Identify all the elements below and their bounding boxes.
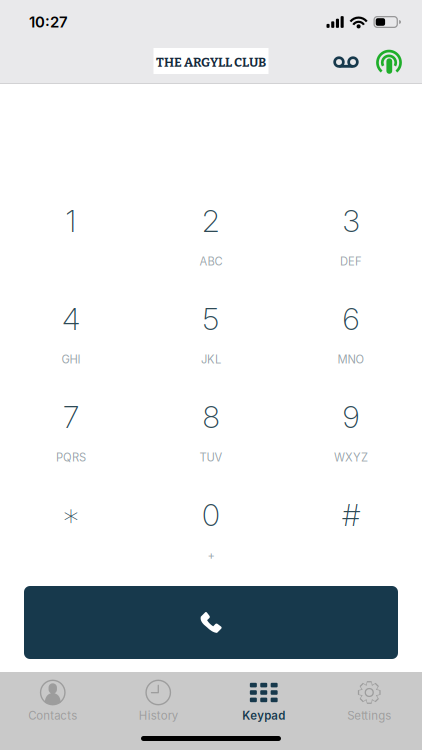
staticText: GHI [61, 353, 80, 366]
button[interactable]: Contacts [0, 677, 105, 725]
staticText: Keypad [242, 709, 285, 722]
staticText: 9 [342, 399, 359, 435]
button[interactable]: 7 [1, 402, 141, 500]
staticText: 0 [202, 497, 220, 533]
button[interactable]: 6 [281, 304, 421, 402]
staticText: ABC [199, 255, 222, 268]
staticText: + [207, 549, 214, 562]
button[interactable]: Voicemail [328, 46, 364, 80]
button[interactable]: Call [24, 586, 398, 659]
staticText: PQRS [56, 451, 86, 464]
staticText: # [342, 497, 360, 533]
staticText: 3 [342, 203, 359, 239]
staticText: Contacts [28, 709, 77, 722]
staticText: Settings [347, 709, 391, 722]
button[interactable]: Keypad [211, 677, 316, 725]
button[interactable]: 3 [281, 206, 421, 304]
button[interactable]: 2 [141, 206, 281, 304]
button[interactable]: Settings [316, 677, 422, 725]
staticText: THE ARGYLL CLUB [156, 55, 266, 70]
button[interactable]: 9 [281, 402, 421, 500]
staticText: 1 [65, 203, 76, 239]
button[interactable]: 5 [141, 304, 281, 402]
staticText: ∗ [61, 497, 80, 533]
button[interactable]: History [105, 677, 211, 725]
staticText: 5 [202, 301, 219, 337]
staticText: 4 [62, 301, 80, 337]
button[interactable]: 0 [141, 500, 281, 598]
button[interactable]: ∗ [1, 500, 141, 598]
staticText: 7 [63, 399, 79, 435]
button[interactable]: # [281, 500, 421, 598]
staticText: WXYZ [334, 451, 368, 464]
staticText: 8 [202, 399, 219, 435]
staticText: JKL [201, 353, 221, 366]
button[interactable]: 1 [1, 206, 141, 304]
staticText: TUV [199, 451, 222, 464]
button[interactable]: 8 [141, 402, 281, 500]
button[interactable]: Live call [373, 46, 405, 80]
staticText: 6 [342, 301, 359, 337]
staticText: History [139, 709, 178, 722]
staticText: DEF [340, 255, 362, 268]
staticText: MNO [337, 353, 364, 366]
button[interactable]: 4 [1, 304, 141, 402]
staticText: 10:27 [29, 13, 68, 31]
staticText: 2 [202, 203, 220, 239]
